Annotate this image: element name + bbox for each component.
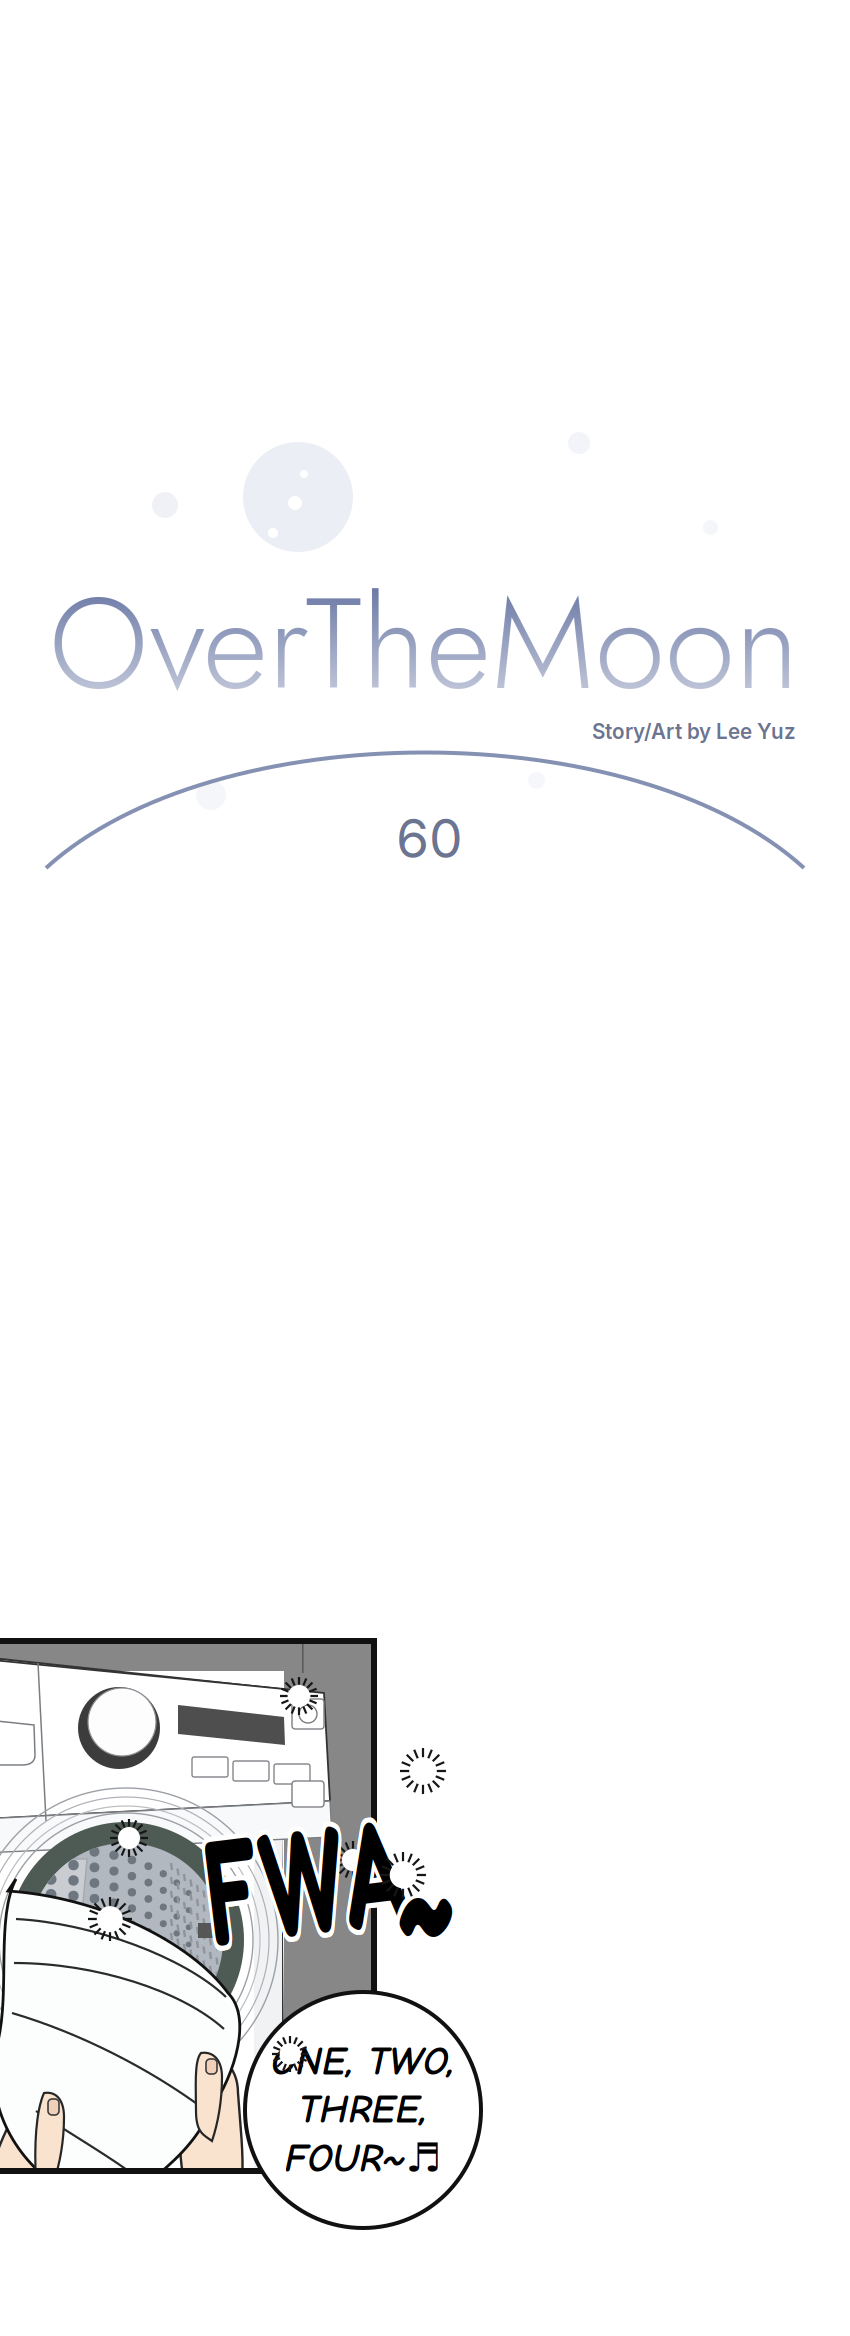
staticText: ~ [396, 1778, 479, 1959]
staticText: ~ [391, 1778, 474, 1959]
staticText: FWA [209, 1780, 546, 1961]
staticText: ~ [400, 1774, 483, 1955]
staticText: FWA [208, 1784, 545, 1965]
staticText: ~ [392, 1774, 475, 1955]
staticText: ~ [396, 1773, 479, 1954]
staticText: ~ [400, 1782, 483, 1963]
staticText: ~ [392, 1782, 475, 1963]
staticText: ONE, TWO, [271, 2038, 455, 2084]
staticText: FWA [204, 1780, 541, 1961]
staticText: FWA [200, 1776, 537, 1957]
staticText: FWA [204, 1775, 541, 1956]
staticText: FWA [208, 1776, 545, 1957]
staticText: FWA [207, 1785, 544, 1966]
staticText: ~ [401, 1778, 484, 1959]
staticText: FWA [200, 1784, 537, 1965]
staticText: ~ [396, 1783, 479, 1964]
staticText: FWA [201, 1785, 538, 1966]
staticText: 60 [396, 806, 463, 870]
staticText: FWA [204, 1785, 541, 1966]
staticText: FWA [201, 1775, 538, 1956]
staticText: THREE, [298, 2086, 427, 2132]
staticText: FWA [199, 1780, 536, 1961]
staticText: Story/Art by Lee Yuz [592, 719, 796, 744]
staticText: FOUR~♬ [284, 2134, 441, 2181]
staticText: FWA [207, 1775, 544, 1956]
